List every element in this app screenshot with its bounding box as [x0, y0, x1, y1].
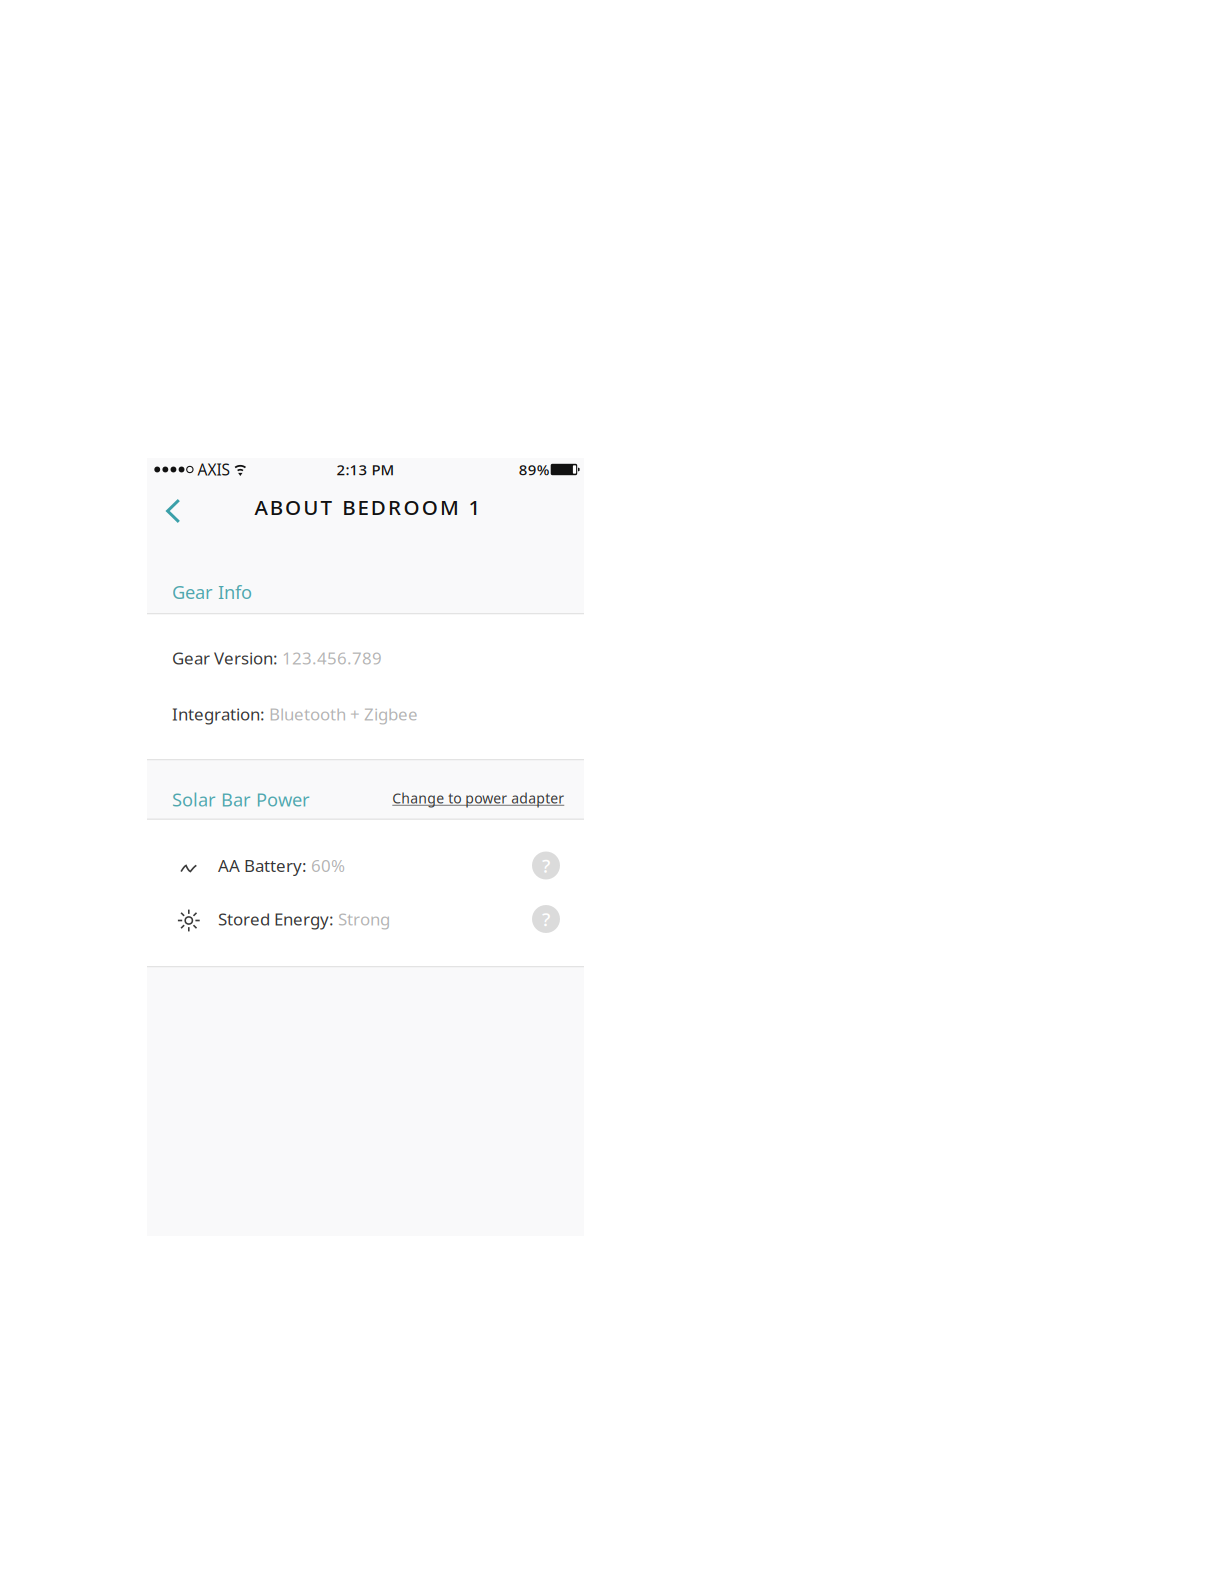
- staticText: AXIS: [197, 459, 229, 480]
- staticText: Gear Version:: [172, 647, 282, 669]
- staticText: AA Battery:: [218, 854, 311, 877]
- staticText: 2:13 PM: [336, 460, 394, 479]
- staticText: ?: [542, 853, 550, 878]
- staticText: 89%: [519, 460, 550, 479]
- button[interactable]: Change to power adapter: [392, 785, 564, 811]
- staticText: ?: [542, 907, 550, 931]
- staticText: Gear Info: [172, 580, 252, 604]
- button[interactable]: About Stored Energy: [532, 905, 560, 933]
- button[interactable]: Back: [166, 496, 210, 526]
- staticText: Solar Bar Power: [172, 787, 310, 812]
- button[interactable]: About AA Battery: [532, 851, 560, 879]
- staticText: ABOUT BEDROOM 1: [254, 493, 481, 521]
- staticText: 123.456.789: [282, 647, 382, 669]
- staticText: Bluetooth + Zigbee: [269, 703, 418, 725]
- staticText: Integration:: [172, 703, 269, 725]
- staticText: Strong: [338, 908, 390, 930]
- staticText: Stored Energy:: [218, 908, 338, 930]
- staticText: Change to power adapter: [392, 789, 564, 807]
- staticText: 60%: [311, 854, 345, 877]
